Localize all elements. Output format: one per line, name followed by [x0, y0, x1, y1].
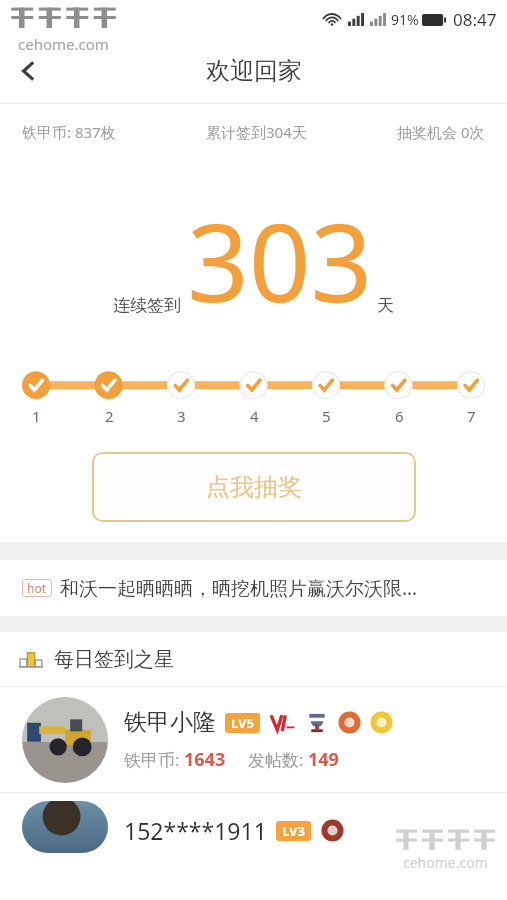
- staticText: 每日签到之星: [54, 647, 174, 672]
- staticText: 连续签到: [113, 295, 181, 316]
- staticText: 152****1911: [124, 815, 267, 846]
- staticText: 铁甲币: 837枚: [22, 122, 116, 142]
- staticText: 抽奖机会 0次: [397, 122, 485, 142]
- staticText: 4: [250, 406, 259, 426]
- staticText: 欢迎回家: [206, 56, 302, 86]
- staticText: LV5: [231, 714, 254, 732]
- staticText: 天: [377, 295, 394, 316]
- button[interactable]: 点我抽奖: [92, 452, 416, 522]
- button[interactable]: 152****1911: [22, 801, 491, 853]
- staticText: 2: [105, 406, 114, 426]
- staticText: 303: [187, 187, 373, 334]
- staticText: 累计签到304天: [206, 122, 307, 142]
- staticText: 点我抽奖: [206, 472, 302, 502]
- staticText: 6: [395, 406, 404, 426]
- staticText: hot: [27, 580, 47, 596]
- button[interactable]: 铁甲小隆: [22, 687, 491, 792]
- staticText: cehome.com: [18, 34, 109, 54]
- button[interactable]: hot: [0, 560, 507, 616]
- button[interactable]: Back: [0, 43, 56, 99]
- staticText: cehome.com: [403, 853, 488, 872]
- staticText: 和沃一起晒晒晒，晒挖机照片赢沃尔沃限…: [60, 575, 418, 601]
- staticText: 铁甲小隆: [124, 708, 216, 737]
- staticText: 发帖数:: [248, 748, 308, 771]
- staticText: 1643: [184, 747, 226, 772]
- staticText: 铁甲币:: [124, 748, 184, 771]
- staticText: 149: [308, 747, 339, 772]
- staticText: 1: [32, 406, 41, 426]
- staticText: 7: [467, 406, 476, 426]
- staticText: LV3: [282, 822, 305, 840]
- staticText: 91%: [391, 10, 419, 29]
- staticText: 3: [177, 406, 186, 426]
- staticText: 5: [322, 406, 331, 426]
- staticText: 08:47: [453, 8, 497, 31]
